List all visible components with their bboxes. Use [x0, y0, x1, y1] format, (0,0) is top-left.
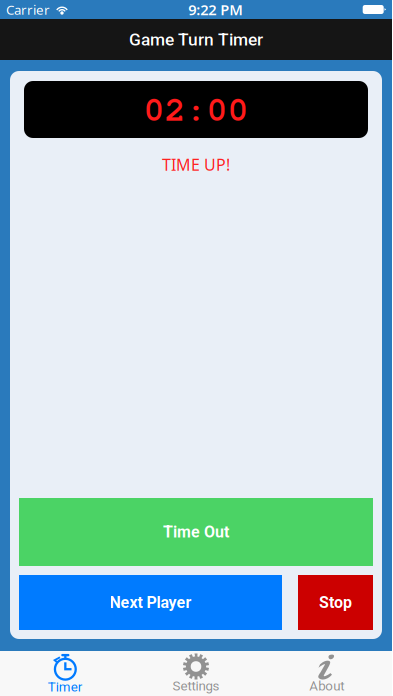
staticText: 02:00 [143, 84, 248, 130]
button[interactable]: Next Player [19, 575, 282, 630]
button[interactable]: About [261, 651, 392, 696]
staticText: Carrier [6, 1, 50, 18]
button[interactable]: Settings [131, 651, 261, 696]
staticText: Settings [172, 678, 219, 694]
button[interactable]: Time Out [19, 498, 373, 566]
staticText: Stop [319, 593, 352, 612]
staticText: Timer [48, 679, 83, 695]
staticText: Next Player [109, 593, 191, 612]
button[interactable]: Stop [298, 575, 373, 630]
staticText: 9:22 PM [188, 0, 243, 19]
staticText: About [309, 678, 344, 694]
staticText: TIME UP! [162, 154, 230, 175]
staticText: Game Turn Timer [129, 29, 263, 50]
button[interactable]: Timer [0, 651, 131, 696]
staticText: Time Out [163, 523, 229, 541]
